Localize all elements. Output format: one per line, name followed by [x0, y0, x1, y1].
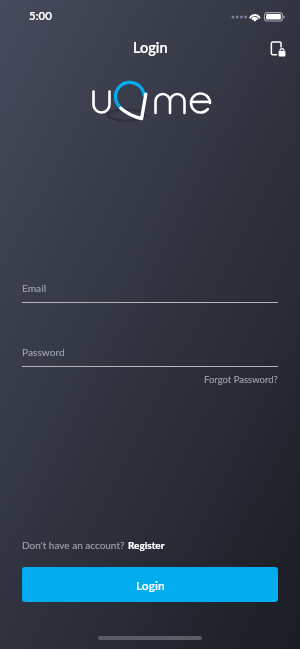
staticText: Login: [133, 39, 168, 56]
button[interactable]: Device lock: [262, 32, 292, 62]
staticText: Don't have an account?: [22, 539, 128, 551]
staticText: Forgot Password?: [204, 374, 278, 385]
staticText: Password: [22, 346, 65, 358]
staticText: Email: [22, 282, 47, 294]
button[interactable]: Login: [22, 567, 278, 602]
button[interactable]: Forgot Password?: [204, 367, 278, 389]
staticText: Register: [128, 539, 165, 551]
staticText: 5:00: [29, 9, 52, 23]
staticText: Login: [136, 578, 165, 592]
button[interactable]: Register: [128, 539, 165, 551]
